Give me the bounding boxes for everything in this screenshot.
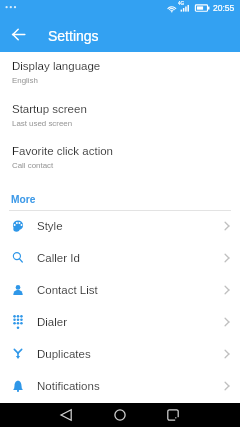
staticText: 20:55 — [213, 3, 235, 12]
button[interactable]: Back — [6, 22, 30, 46]
staticText: Style — [37, 220, 63, 233]
button[interactable]: Favorite click action — [0, 145, 240, 187]
button[interactable]: Caller Id — [0, 242, 240, 274]
staticText: Last used screen — [12, 119, 73, 128]
staticText: Contact List — [37, 284, 98, 297]
staticText: Caller Id — [37, 252, 80, 265]
staticText: 4G — [178, 1, 185, 6]
button[interactable]: Duplicates — [0, 338, 240, 370]
button[interactable]: Back — [54, 403, 78, 427]
staticText: Settings — [48, 28, 99, 44]
staticText: Dialer — [37, 316, 68, 329]
staticText: More — [11, 194, 36, 205]
staticText: Startup screen — [12, 103, 87, 116]
button[interactable]: Home — [108, 403, 132, 427]
button[interactable]: Startup screen — [0, 103, 240, 145]
staticText: Display language — [12, 60, 101, 73]
staticText: English — [12, 76, 38, 85]
staticText: Favorite click action — [12, 145, 113, 158]
button[interactable]: Style — [0, 210, 240, 242]
button[interactable]: Notifications — [0, 370, 240, 402]
button[interactable]: Contact List — [0, 274, 240, 306]
button[interactable]: Display language — [0, 60, 240, 102]
staticText: Duplicates — [37, 348, 91, 361]
button[interactable]: Dialer — [0, 306, 240, 338]
staticText: Notifications — [37, 380, 100, 393]
button[interactable]: Recents — [161, 403, 185, 427]
staticText: Call contact — [12, 161, 54, 170]
